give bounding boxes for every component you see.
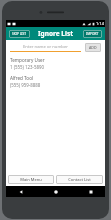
button[interactable]: Main Menu bbox=[8, 175, 54, 184]
staticText: Temporary User bbox=[10, 57, 45, 63]
staticText: Ignore List bbox=[38, 29, 73, 38]
staticText: Alfred Tool bbox=[10, 75, 34, 81]
staticText: (555) 959-8888 bbox=[10, 82, 41, 88]
staticText: Main Menu bbox=[20, 177, 42, 182]
button[interactable]: SKIP LIST bbox=[9, 30, 30, 38]
staticText: SKIP LIST bbox=[12, 32, 27, 36]
button[interactable]: Back bbox=[16, 187, 25, 196]
button[interactable]: Home bbox=[51, 187, 60, 196]
button[interactable]: Alfred Tool bbox=[6, 74, 105, 89]
button[interactable]: Contact List bbox=[56, 175, 103, 184]
staticText: 1 (555) 123-5890 bbox=[10, 64, 44, 70]
button[interactable]: Recent apps bbox=[86, 187, 95, 196]
staticText: Contact List bbox=[68, 177, 91, 182]
staticText: IMPORT bbox=[86, 32, 99, 36]
button[interactable]: ADD bbox=[85, 43, 101, 52]
button[interactable]: Enter name or number bbox=[10, 44, 81, 52]
staticText: Enter name or number bbox=[10, 44, 81, 50]
staticText: ADD bbox=[89, 45, 97, 50]
staticText: 1:14 bbox=[96, 21, 104, 26]
button[interactable]: Temporary User bbox=[6, 56, 105, 71]
button[interactable]: IMPORT bbox=[83, 30, 102, 38]
